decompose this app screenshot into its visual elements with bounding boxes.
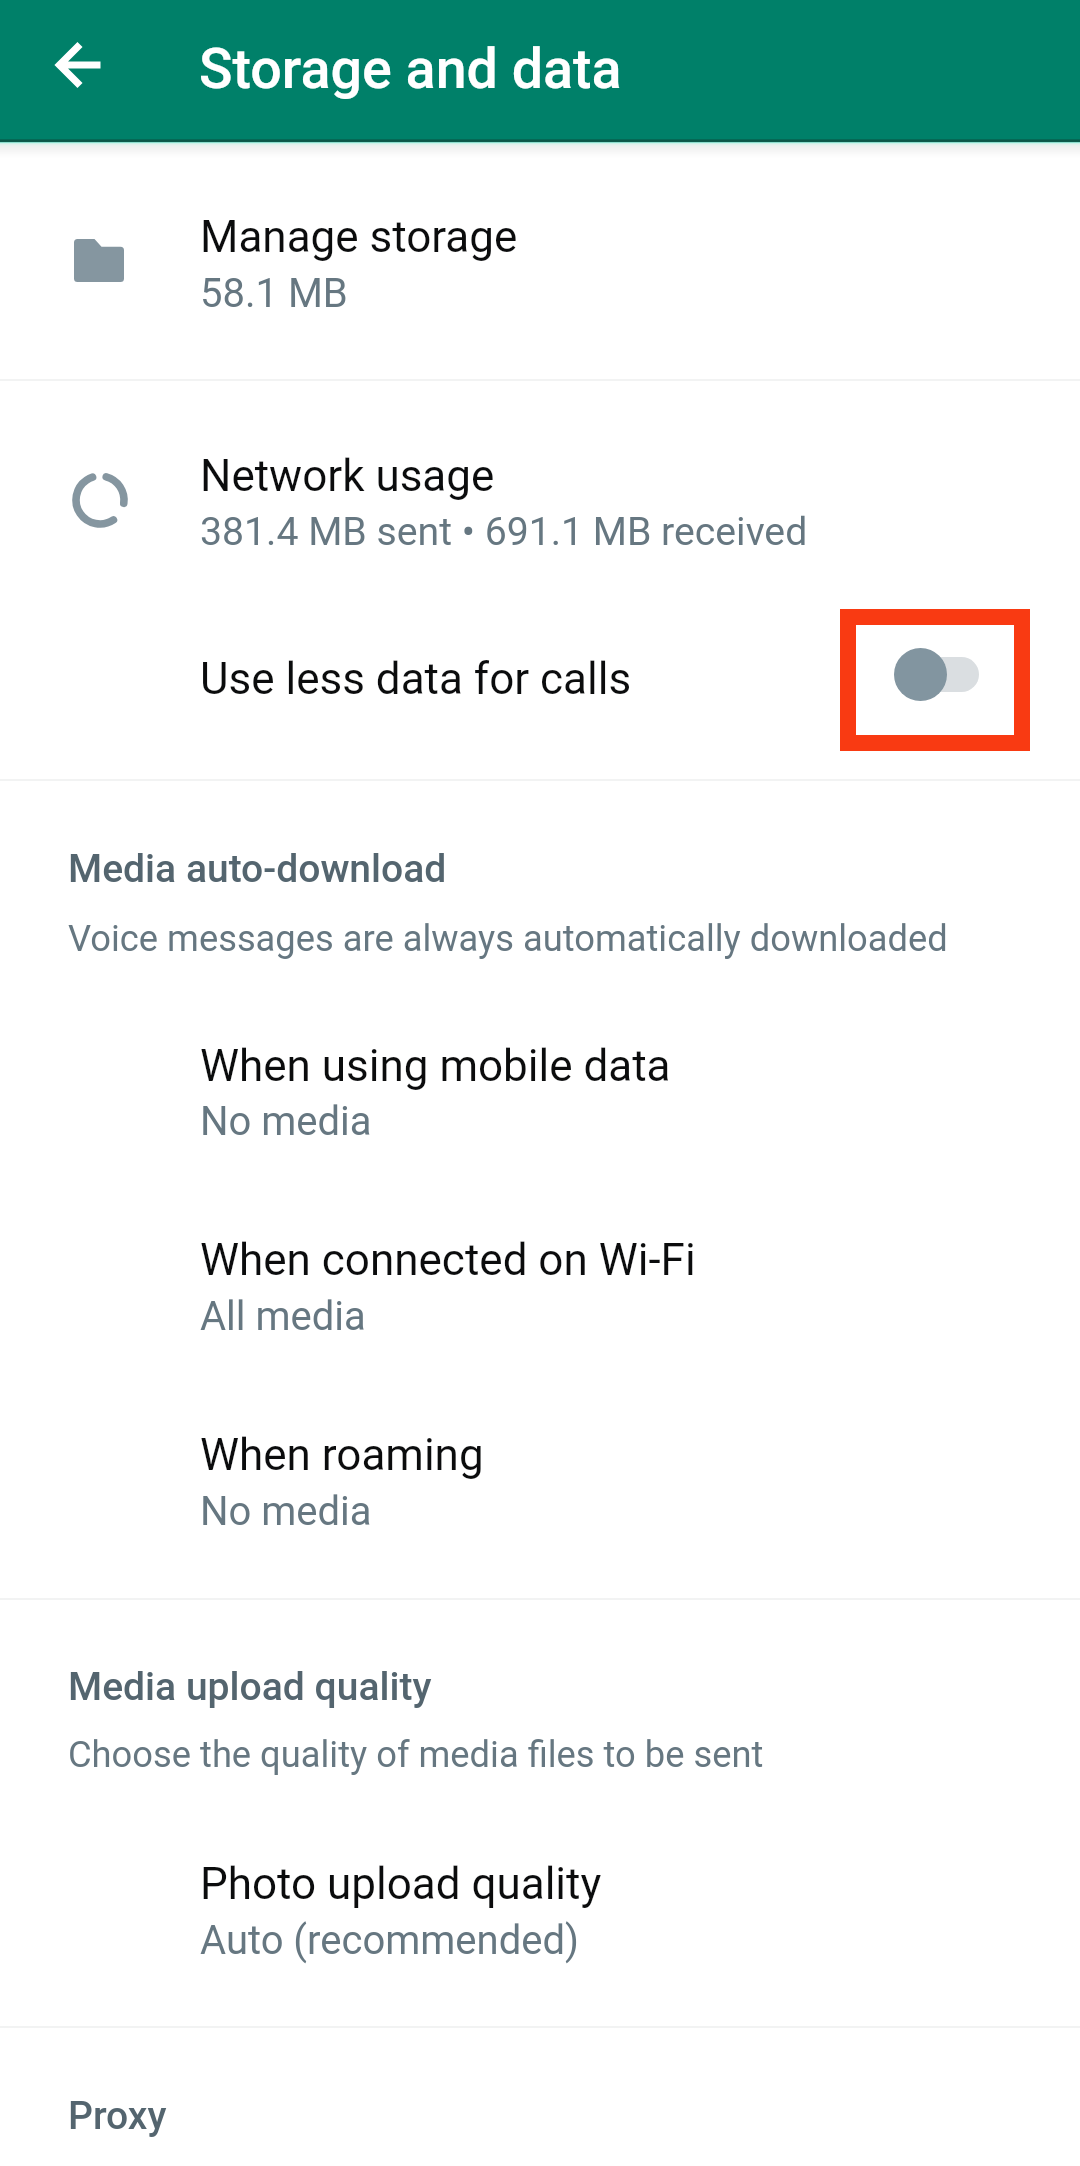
staticText: When roaming <box>200 1429 484 1481</box>
staticText: Proxy <box>68 2093 167 2139</box>
button[interactable] <box>0 580 1080 776</box>
staticText: Auto (recommended) <box>200 1917 579 1964</box>
button[interactable] <box>0 1820 1080 2014</box>
staticText: Voice messages are always automatically … <box>68 917 948 960</box>
staticText: No media <box>200 1098 372 1145</box>
button[interactable] <box>0 380 1080 570</box>
staticText: Media auto-download <box>68 846 447 892</box>
button[interactable] <box>0 1391 1080 1585</box>
staticText: Media upload quality <box>68 1664 432 1710</box>
staticText: Use less data for calls <box>200 653 632 705</box>
staticText: Photo upload quality <box>200 1858 602 1910</box>
staticText: Network usage <box>200 450 495 502</box>
staticText: When connected on Wi-Fi <box>200 1234 696 1286</box>
staticText: 381.4 MB sent • 691.1 MB received <box>200 509 808 555</box>
button[interactable] <box>0 143 1080 375</box>
staticText: No media <box>200 1488 372 1535</box>
staticText: Choose the quality of media files to be … <box>68 1733 764 1776</box>
staticText: When using mobile data <box>200 1040 671 1092</box>
button[interactable]: Back <box>13 0 146 131</box>
button[interactable] <box>0 1197 1080 1391</box>
button[interactable] <box>0 1003 1080 1197</box>
button[interactable]: Use less data for calls <box>880 634 992 714</box>
staticText: All media <box>200 1293 366 1340</box>
staticText: Storage and data <box>199 37 622 102</box>
staticText: Manage storage <box>200 211 518 263</box>
staticText: 58.1 MB <box>200 270 348 317</box>
